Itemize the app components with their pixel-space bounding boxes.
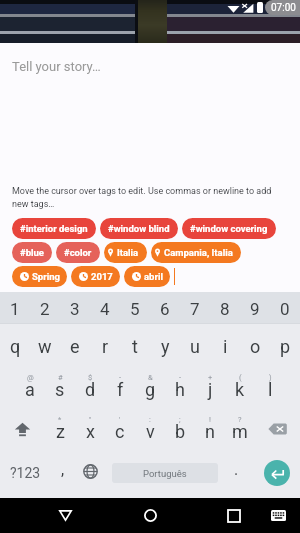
button[interactable]: 1 <box>0 292 30 323</box>
staticText: & <box>148 373 153 382</box>
button[interactable]: ' <box>105 408 135 450</box>
button[interactable]: , <box>50 450 75 492</box>
button[interactable]: ; <box>165 408 195 450</box>
button[interactable]: Italia <box>104 242 147 263</box>
button[interactable]: 2 <box>30 292 60 323</box>
staticText: g <box>145 379 156 400</box>
button[interactable]: ?123 <box>0 450 50 492</box>
button[interactable]: 9 <box>240 292 270 323</box>
staticText: #window blind <box>108 223 170 234</box>
button[interactable]: ? <box>225 408 255 450</box>
staticText: t <box>132 336 138 357</box>
button[interactable]: u <box>180 324 210 366</box>
staticText: - <box>119 373 122 382</box>
button[interactable]: i <box>210 324 240 366</box>
staticText: Italia <box>117 247 139 258</box>
button[interactable]: 6 <box>150 292 180 323</box>
staticText: ? <box>238 415 242 424</box>
staticText: 1 <box>10 299 20 319</box>
staticText: #interior design <box>20 223 88 234</box>
staticText: 6 <box>160 299 170 319</box>
staticText: Move the cursor over tags to edit. Use c… <box>12 186 272 209</box>
button[interactable]: r <box>90 324 120 366</box>
staticText: s <box>55 379 65 400</box>
staticText: x <box>86 421 95 442</box>
staticText: n <box>205 421 215 442</box>
button[interactable]: Hide keyboard <box>258 498 298 533</box>
button[interactable]: 8 <box>210 292 240 323</box>
staticText: 3 <box>70 299 80 319</box>
staticText: m <box>232 421 248 442</box>
staticText: Português <box>143 468 187 479</box>
button[interactable]: t <box>120 324 150 366</box>
staticText: j <box>208 379 213 400</box>
button[interactable]: 5 <box>120 292 150 323</box>
button[interactable]: #window blind <box>100 218 178 239</box>
staticText: ) <box>269 373 272 382</box>
button[interactable]: Enter <box>254 450 300 492</box>
button[interactable]: #color <box>56 242 100 263</box>
button[interactable]: Change language <box>75 450 105 492</box>
button[interactable]: Recents <box>211 498 257 533</box>
staticText: 9 <box>250 299 260 319</box>
staticText: ( <box>239 373 242 382</box>
button[interactable]: " <box>75 408 105 450</box>
button[interactable]: #blue <box>12 242 52 263</box>
button[interactable]: abril <box>124 266 170 287</box>
staticText: y <box>161 336 170 357</box>
button[interactable]: @ <box>15 366 45 408</box>
staticText: Tell your story… <box>12 59 101 74</box>
button[interactable]: #interior design <box>12 218 96 239</box>
button[interactable]: 2017 <box>71 266 120 287</box>
staticText: w <box>38 336 52 357</box>
staticText: c <box>115 421 125 442</box>
button[interactable]: 3 <box>60 292 90 323</box>
staticText: b <box>175 421 186 442</box>
button[interactable]: q <box>0 324 30 366</box>
button[interactable]: y <box>150 324 180 366</box>
staticText: e <box>70 336 80 357</box>
button[interactable]: p <box>270 324 300 366</box>
staticText: u <box>190 336 200 357</box>
button[interactable]: Home <box>127 498 173 533</box>
button[interactable]: - <box>105 366 135 408</box>
button[interactable]: ) <box>255 366 285 408</box>
button[interactable]: 0 <box>270 292 300 323</box>
button[interactable]: 7 <box>180 292 210 323</box>
staticText: #blue <box>20 247 44 258</box>
button[interactable]: w <box>30 324 60 366</box>
button[interactable]: ! <box>195 408 225 450</box>
button[interactable]: : <box>135 408 165 450</box>
staticText: 8 <box>220 299 230 319</box>
staticText: ! <box>209 415 211 424</box>
button[interactable]: Backspace <box>255 408 300 450</box>
staticText: . <box>234 460 239 479</box>
staticText: , <box>61 460 65 479</box>
button[interactable]: $ <box>75 366 105 408</box>
staticText: a <box>25 379 35 400</box>
button[interactable]: . <box>219 450 254 492</box>
button[interactable]: Português <box>112 463 218 483</box>
button[interactable]: ( <box>225 366 255 408</box>
staticText: Campania, Italia <box>164 247 233 258</box>
button[interactable]: e <box>60 324 90 366</box>
button[interactable]: o <box>240 324 270 366</box>
staticText: @ <box>27 373 34 382</box>
staticText: 7 <box>190 299 200 319</box>
button[interactable]: Shift <box>0 408 45 450</box>
button[interactable]: * <box>45 408 75 450</box>
button[interactable]: 4 <box>90 292 120 323</box>
staticText: abril <box>144 271 163 282</box>
staticText: 2017 <box>91 271 113 282</box>
button[interactable]: #window covering <box>182 218 276 239</box>
button[interactable]: & <box>135 366 165 408</box>
button[interactable]: - <box>165 366 195 408</box>
staticText: l <box>268 379 273 400</box>
staticText: f <box>117 379 124 400</box>
button[interactable]: Campania, Italia <box>151 242 241 263</box>
button[interactable]: Back <box>42 498 88 533</box>
button[interactable]: # <box>45 366 75 408</box>
button[interactable]: + <box>195 366 225 408</box>
button[interactable]: Spring <box>12 266 67 287</box>
staticText: ' <box>119 415 121 424</box>
